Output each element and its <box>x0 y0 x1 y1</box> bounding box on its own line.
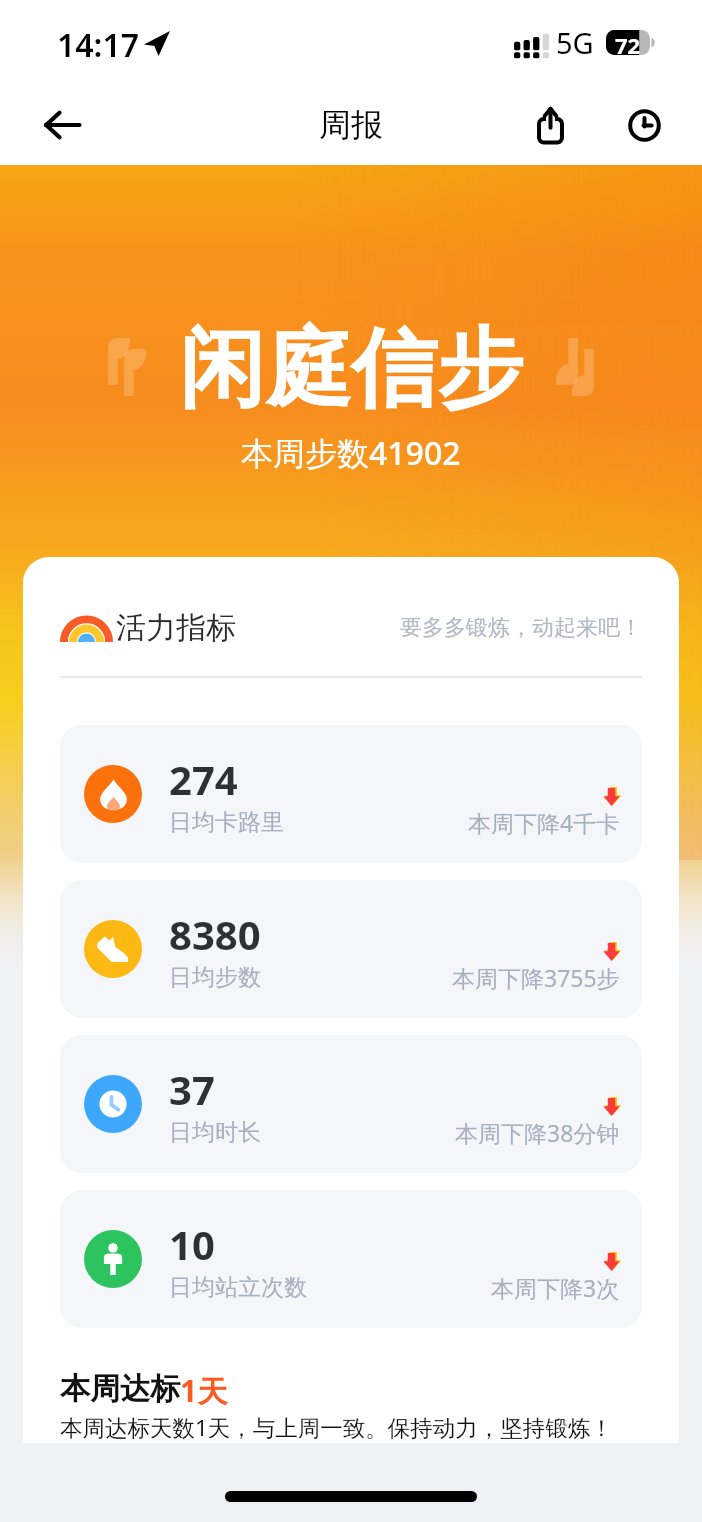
staticText: 本周下降38分钟 <box>455 1117 620 1148</box>
staticText: 37 <box>169 1062 215 1116</box>
staticText: 日均步数 <box>169 963 261 992</box>
staticText: 1天 <box>180 1370 228 1411</box>
button[interactable]: 37 <box>60 1035 642 1173</box>
button[interactable]: Share <box>519 94 581 156</box>
staticText: 14:17 <box>57 23 140 67</box>
button[interactable]: History <box>613 94 675 156</box>
staticText: 72 <box>615 30 641 55</box>
staticText: 本周达标 <box>60 1370 180 1408</box>
staticText: 闲庭信步 <box>179 315 523 423</box>
staticText: 日均时长 <box>169 1118 261 1147</box>
staticText: 本周下降3次 <box>491 1272 620 1303</box>
staticText: 5G <box>556 23 594 62</box>
button[interactable]: Back <box>32 95 92 155</box>
staticText: 274 <box>169 752 238 806</box>
staticText: 周报 <box>319 105 383 145</box>
staticText: 本周下降3755步 <box>452 962 620 993</box>
staticText: 8380 <box>169 907 261 961</box>
button[interactable]: 8380 <box>60 880 642 1018</box>
staticText: 10 <box>169 1217 215 1271</box>
staticText: 要多多锻炼，动起来吧！ <box>400 614 642 642</box>
button[interactable]: 10 <box>60 1190 642 1328</box>
button[interactable]: 274 <box>60 725 642 863</box>
staticText: 活力指标 <box>116 609 236 647</box>
staticText: 本周达标天数1天，与上周一致。保持动力，坚持锻炼！ <box>60 1412 613 1443</box>
staticText: 本周步数41902 <box>241 431 461 475</box>
staticText: 日均站立次数 <box>169 1273 307 1302</box>
staticText: 日均卡路里 <box>169 808 284 837</box>
staticText: 本周下降4千卡 <box>468 807 620 838</box>
